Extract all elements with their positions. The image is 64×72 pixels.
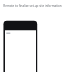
staticText: Remote to finalize set-up site informati… (3, 4, 62, 8)
